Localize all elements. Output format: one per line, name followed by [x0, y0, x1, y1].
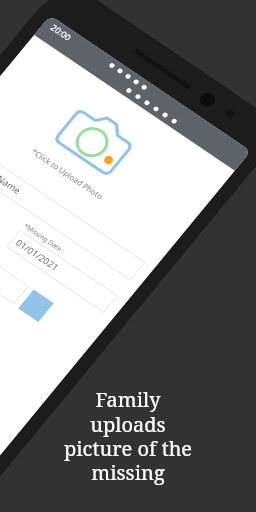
button[interactable]: Home City — [0, 187, 31, 322]
staticText: 20:00 — [47, 19, 75, 45]
button[interactable]: Child's Full Name — [0, 112, 148, 307]
staticText: Family uploads picture of the missing — [0, 386, 256, 486]
button[interactable]: 01/01/2021 — [4, 216, 120, 327]
staticText: *Click to Upload Photo — [28, 136, 107, 212]
staticText: 01/01/2021 — [12, 231, 63, 279]
staticText: Child's Full Name — [0, 137, 25, 205]
staticText: *Missing Date : — [21, 215, 68, 261]
button[interactable]: Pick date — [15, 287, 56, 325]
